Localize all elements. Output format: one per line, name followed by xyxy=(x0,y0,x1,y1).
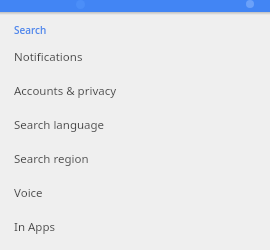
button[interactable]: In Apps xyxy=(0,210,270,244)
staticText: Accounts & privacy xyxy=(14,83,117,99)
button[interactable]: Search language xyxy=(0,108,270,142)
button[interactable]: More options xyxy=(246,0,254,8)
staticText: In Apps xyxy=(14,219,55,235)
staticText: Search language xyxy=(14,117,105,133)
button[interactable]: Accounts & privacy xyxy=(0,74,270,108)
staticText: Search xyxy=(14,23,47,37)
button[interactable]: Notifications xyxy=(0,40,270,74)
staticText: Voice xyxy=(14,185,43,201)
staticText: Search region xyxy=(14,151,89,167)
staticText: Notifications xyxy=(14,49,83,65)
button[interactable]: Voice xyxy=(0,176,270,210)
button[interactable]: Search region xyxy=(0,142,270,176)
other: Title xyxy=(76,0,85,9)
